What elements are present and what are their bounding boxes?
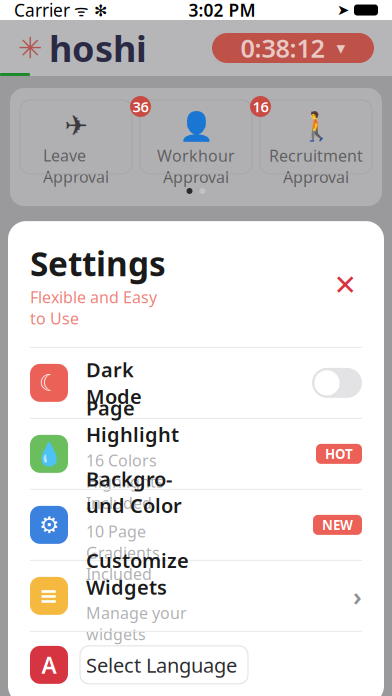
staticText: Recruitment xyxy=(269,145,363,166)
staticText: Flexible and Easy to Use xyxy=(30,286,157,329)
button[interactable]: ☾ xyxy=(8,348,384,418)
staticText: ➤ xyxy=(337,2,349,18)
button[interactable]: ⚙ xyxy=(8,490,384,560)
button[interactable]: 👤 xyxy=(140,100,252,174)
button[interactable]: 💧 xyxy=(8,419,384,489)
staticText: ᯤ ✻ xyxy=(70,0,107,21)
staticText: Page Highlight xyxy=(86,394,179,447)
staticText: hoshi xyxy=(49,24,147,72)
staticText: 16 xyxy=(252,97,268,116)
staticText: Select Language xyxy=(86,652,237,678)
staticText: NEW xyxy=(322,516,353,534)
button[interactable]: ≡ xyxy=(8,561,384,631)
button[interactable]: Settings xyxy=(314,660,392,696)
staticText: A xyxy=(41,650,56,680)
staticText: ✈ xyxy=(64,110,87,142)
staticText: Approval xyxy=(283,166,349,187)
staticText: 3:02 PM xyxy=(188,0,255,21)
staticText: Settings xyxy=(30,241,166,285)
button[interactable]: Home xyxy=(0,660,78,696)
staticText: 🚶 xyxy=(298,110,333,142)
button[interactable]: Close xyxy=(328,268,362,302)
staticText: Home xyxy=(18,668,60,688)
staticText: ⚙ xyxy=(39,512,59,538)
staticText: 10 Page Gradients Included xyxy=(86,521,160,584)
staticText: Customize Widgets xyxy=(86,547,189,600)
button[interactable]: Menu xyxy=(235,660,314,696)
staticText: ✕ xyxy=(333,269,356,301)
staticText: HOT xyxy=(325,445,353,463)
button[interactable]: A xyxy=(8,632,384,696)
staticText: Approval xyxy=(163,166,229,187)
staticText: 👤 xyxy=(178,110,213,142)
button[interactable]: 🚶 xyxy=(260,100,372,174)
staticText: Manage your widgets xyxy=(86,602,187,645)
staticText: 16 Colors Highlights Included xyxy=(86,450,164,513)
button[interactable]: Calendar xyxy=(78,660,157,696)
staticText: ▾ xyxy=(336,38,345,58)
staticText: Dark Mode xyxy=(86,356,142,409)
button[interactable]: 0:38:12 xyxy=(212,33,374,63)
staticText: › xyxy=(353,579,362,613)
staticText: Leave Approval xyxy=(43,145,109,187)
staticText: 36 xyxy=(132,97,148,116)
staticText: ✳ xyxy=(18,31,43,65)
staticText: ☾ xyxy=(39,370,59,396)
staticText: Updates xyxy=(167,668,224,688)
staticText: Carrier xyxy=(14,0,70,21)
staticText: 💧 xyxy=(35,441,63,467)
staticText: ≡ xyxy=(39,583,58,609)
button[interactable]: Updates xyxy=(157,660,235,696)
staticText: Workhour xyxy=(157,145,235,166)
staticText: 0:38:12 xyxy=(240,31,324,65)
staticText: Calendar xyxy=(87,668,148,688)
staticText: Background Color xyxy=(86,465,182,518)
button[interactable]: ✈ xyxy=(20,100,132,174)
